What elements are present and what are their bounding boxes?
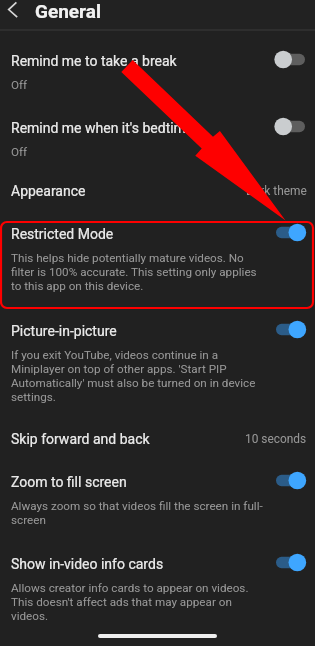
- button[interactable]: Zoom to fill screen: [0, 474, 315, 527]
- staticText: Skip forward and back: [11, 431, 150, 447]
- button[interactable]: Picture-in-picture: [0, 323, 315, 404]
- button[interactable]: Back: [0, 0, 26, 25]
- staticText: 10 seconds: [245, 432, 307, 446]
- staticText: Off: [11, 78, 28, 92]
- button[interactable]: Switch off: [269, 120, 307, 133]
- button[interactable]: Switch on: [269, 556, 307, 569]
- staticText: Picture-in-picture: [11, 323, 117, 339]
- button[interactable]: Switch on: [269, 474, 307, 487]
- button[interactable]: Remind me to take a break: [0, 53, 315, 92]
- staticText: Always zoom so that videos fill the scre…: [11, 499, 263, 527]
- staticText: Restricted Mode: [11, 226, 114, 242]
- staticText: Off: [11, 145, 28, 159]
- staticText: If you exit YouTube, videos continue in …: [11, 348, 263, 404]
- staticText: Allows creator info cards to appear on v…: [11, 581, 263, 623]
- staticText: General: [35, 0, 101, 22]
- button[interactable]: Show in-video info cards: [0, 556, 315, 623]
- staticText: Zoom to fill screen: [11, 474, 127, 490]
- button[interactable]: Skip forward and back: [0, 431, 315, 447]
- button[interactable]: Restricted Mode: [0, 226, 315, 293]
- button[interactable]: Switch off: [269, 53, 307, 66]
- button[interactable]: Appearance: [0, 183, 315, 199]
- staticText: Dark theme: [246, 184, 307, 198]
- staticText: Show in-video info cards: [11, 556, 164, 572]
- staticText: Remind me to take a break: [11, 53, 177, 69]
- staticText: Remind me when it's bedtime: [11, 120, 194, 136]
- button[interactable]: Switch on: [269, 323, 307, 336]
- button[interactable]: Switch on: [269, 226, 307, 239]
- staticText: This helps hide potentially mature video…: [11, 251, 263, 293]
- button[interactable]: Remind me when it's bedtime: [0, 120, 315, 159]
- staticText: Appearance: [11, 183, 86, 199]
